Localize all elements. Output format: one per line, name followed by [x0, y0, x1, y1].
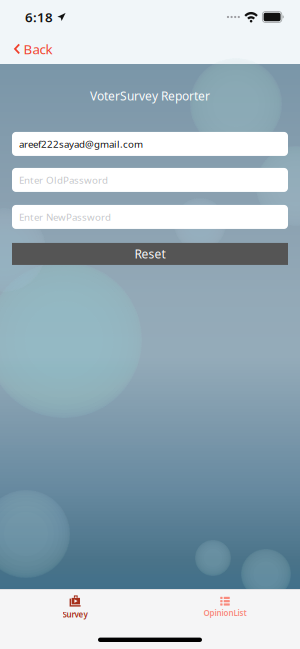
button[interactable]: Enter OldPassword — [12, 168, 288, 192]
staticText: Enter OldPassword — [19, 173, 108, 187]
button[interactable]: Survey — [0, 589, 150, 625]
staticText: Reset — [134, 246, 165, 262]
button[interactable]: areef222sayad@gmail.com — [12, 132, 288, 156]
button[interactable]: Enter NewPassword — [12, 205, 288, 229]
staticText: Back — [23, 40, 52, 58]
button[interactable]: Back — [0, 34, 60, 64]
button[interactable]: OpinionList — [150, 589, 300, 625]
staticText: VoterSurvey Reporter — [90, 88, 210, 104]
staticText: OpinionList — [203, 608, 246, 618]
staticText: Survey — [62, 609, 87, 620]
staticText: 6:18 — [25, 8, 53, 26]
staticText: Enter NewPassword — [19, 210, 111, 224]
button[interactable]: Reset — [12, 243, 288, 265]
staticText: areef222sayad@gmail.com — [19, 137, 143, 151]
